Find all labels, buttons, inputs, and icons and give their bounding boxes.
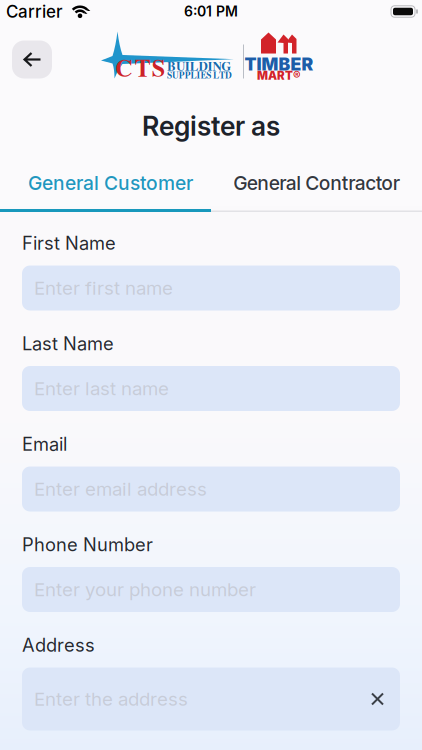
staticText: SUPPLIES LTD (167, 68, 232, 81)
staticText: Enter the address (34, 688, 188, 710)
staticText: BUILDING (167, 56, 231, 75)
staticText: Enter email address (34, 478, 207, 500)
staticText: General Contractor (233, 171, 400, 195)
staticText: Register as (142, 110, 280, 142)
staticText: MART® (257, 69, 301, 82)
staticText: T (134, 49, 150, 85)
staticText: Email (22, 433, 67, 455)
staticText: Enter your phone number (34, 578, 256, 601)
button[interactable]: Last Name (22, 366, 400, 411)
staticText: Phone Number (22, 533, 153, 555)
staticText: S (152, 49, 165, 85)
staticText: 6:01 PM (184, 3, 238, 20)
staticText: Address (22, 634, 95, 656)
staticText: General Customer (28, 171, 193, 195)
staticText: C (115, 49, 133, 85)
button[interactable]: Email (22, 466, 400, 511)
staticText: TIMBER (244, 53, 313, 75)
button[interactable]: First Name (22, 265, 400, 310)
staticText: Enter first name (34, 277, 173, 299)
staticText: Carrier (6, 1, 63, 22)
staticText: First Name (22, 232, 116, 254)
button[interactable]: Phone Number (22, 567, 400, 612)
button[interactable]: Clear address (371, 692, 400, 705)
staticText: Last Name (22, 332, 114, 354)
button[interactable]: Back (12, 40, 52, 78)
staticText: Enter last name (34, 377, 169, 400)
button[interactable]: General Contractor (211, 173, 422, 193)
button[interactable]: General Customer (0, 173, 211, 193)
button[interactable]: Address (22, 667, 400, 730)
